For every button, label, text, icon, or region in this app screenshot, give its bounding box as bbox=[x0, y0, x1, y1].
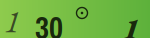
staticText: 1 bbox=[4, 0, 19, 38]
staticText: 1 bbox=[123, 8, 139, 38]
staticText: 30 bbox=[35, 7, 63, 38]
